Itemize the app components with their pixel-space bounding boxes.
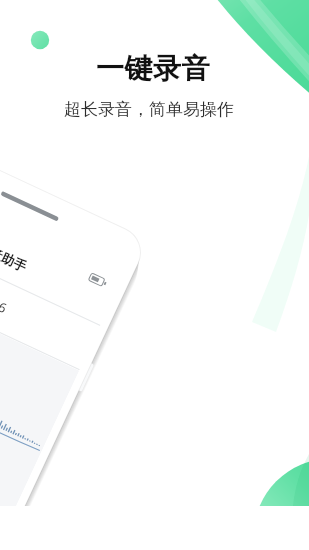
staticText: 一键录音 — [96, 51, 210, 86]
staticText: 超长录音，简单易操作 — [64, 99, 234, 120]
